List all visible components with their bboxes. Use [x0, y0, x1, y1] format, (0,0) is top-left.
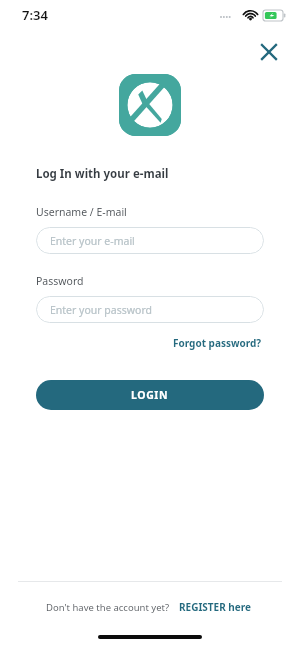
staticText: LOGIN [131, 388, 169, 402]
staticText: Enter your e-mail [50, 234, 135, 248]
staticText: Don't have the account yet? [46, 601, 170, 614]
staticText: Log In with your e-mail [36, 166, 169, 182]
staticText: 7:34 [22, 6, 48, 24]
button[interactable]: Forgot password? [171, 333, 264, 353]
staticText: Forgot password? [173, 336, 262, 350]
staticText: Enter your password [50, 303, 152, 317]
button[interactable]: REGISTER here [177, 597, 254, 617]
button[interactable]: Enter your e-mail [36, 227, 264, 254]
button[interactable]: Close [254, 37, 284, 67]
button[interactable]: LOGIN [36, 380, 264, 410]
staticText: REGISTER here [179, 600, 252, 614]
staticText: Username / E-mail [36, 205, 127, 219]
button[interactable]: Enter your password [36, 296, 264, 323]
staticText: Password [36, 274, 84, 288]
